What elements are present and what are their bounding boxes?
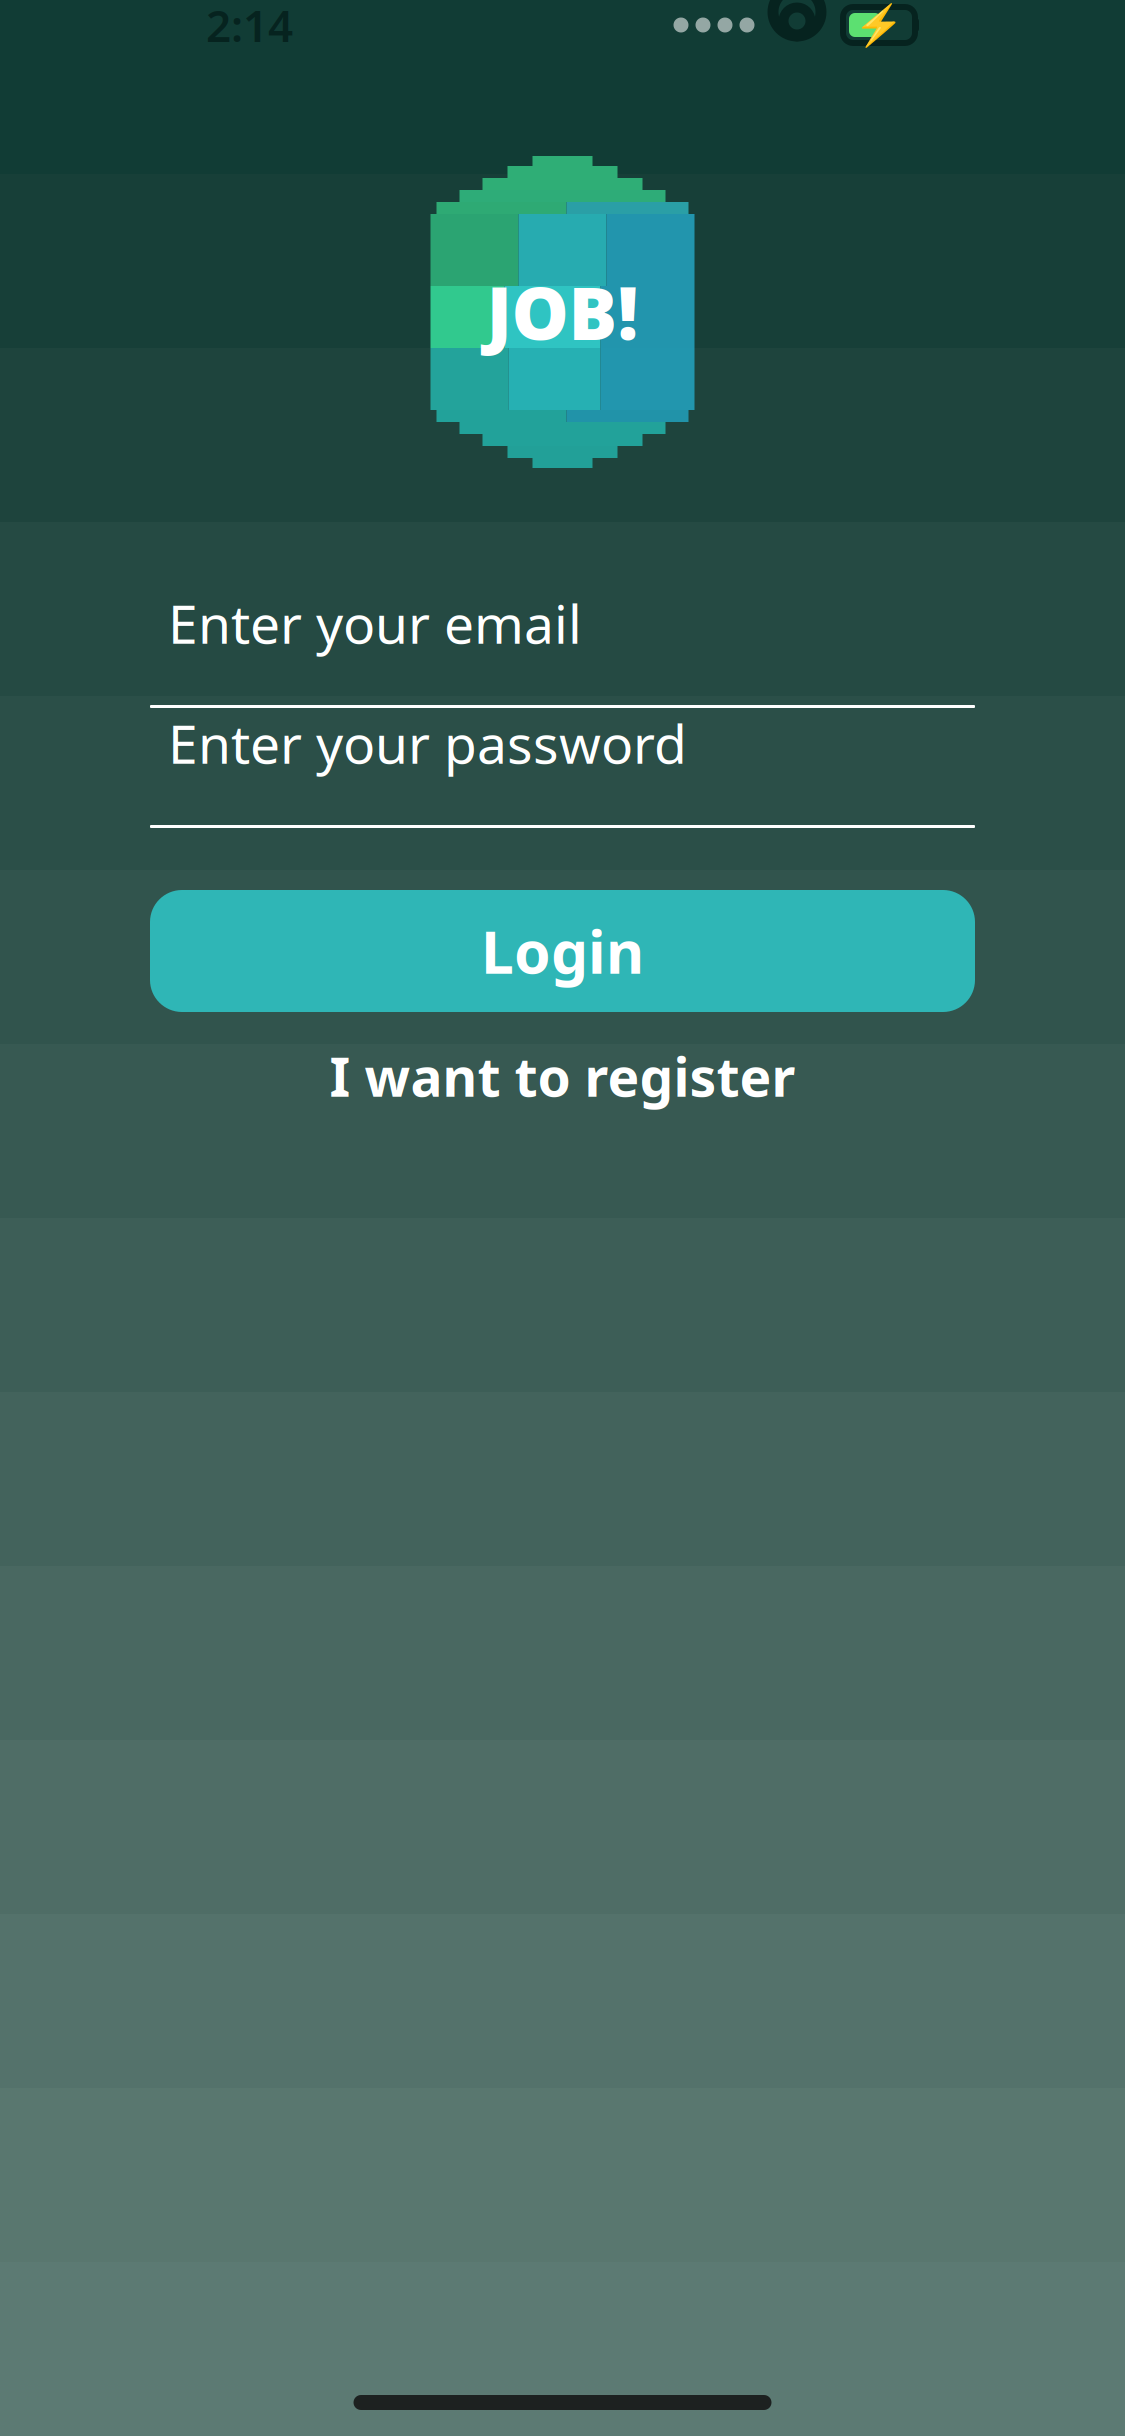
- staticText: Login: [481, 912, 644, 990]
- staticText: JOB!: [486, 264, 638, 360]
- staticText: Enter your email: [168, 588, 582, 658]
- button[interactable]: I want to register: [150, 1044, 975, 1108]
- button[interactable]: Enter your email: [150, 590, 975, 708]
- button[interactable]: Enter your password: [150, 710, 975, 828]
- button[interactable]: Login: [150, 890, 975, 1012]
- staticText: Enter your password: [168, 708, 687, 778]
- staticText: ⚡: [854, 2, 904, 48]
- staticText: 2:14: [206, 0, 293, 54]
- staticText: I want to register: [329, 1041, 795, 1111]
